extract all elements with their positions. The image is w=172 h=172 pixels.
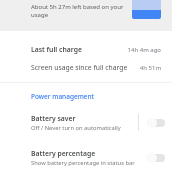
button[interactable]: Power management: [0, 83, 172, 109]
staticText: Battery percentage: [31, 149, 96, 158]
staticText: About 5h 27m left based on your usage: [31, 3, 126, 19]
button[interactable]: Screen usage since full charge: [0, 55, 172, 73]
staticText: Screen usage since full charge: [31, 63, 139, 72]
staticText: 14h 4m ago: [127, 46, 161, 54]
staticText: 4h 51m: [139, 64, 161, 72]
staticText: Power management: [31, 92, 95, 101]
button[interactable]: Battery saver: [147, 118, 165, 128]
staticText: Show battery percentage in status bar: [31, 159, 135, 167]
button[interactable]: Battery saver: [0, 109, 172, 136]
button[interactable]: About 5h 27m left based on your usage: [0, 0, 172, 31]
button[interactable]: Last full charge: [0, 31, 172, 55]
button[interactable]: Battery percentage: [147, 153, 165, 163]
button[interactable]: Battery percentage: [0, 144, 172, 171]
staticText: Off / Never turn on automatically: [31, 124, 121, 132]
staticText: Last full charge: [31, 45, 127, 54]
staticText: Battery saver: [31, 114, 76, 123]
